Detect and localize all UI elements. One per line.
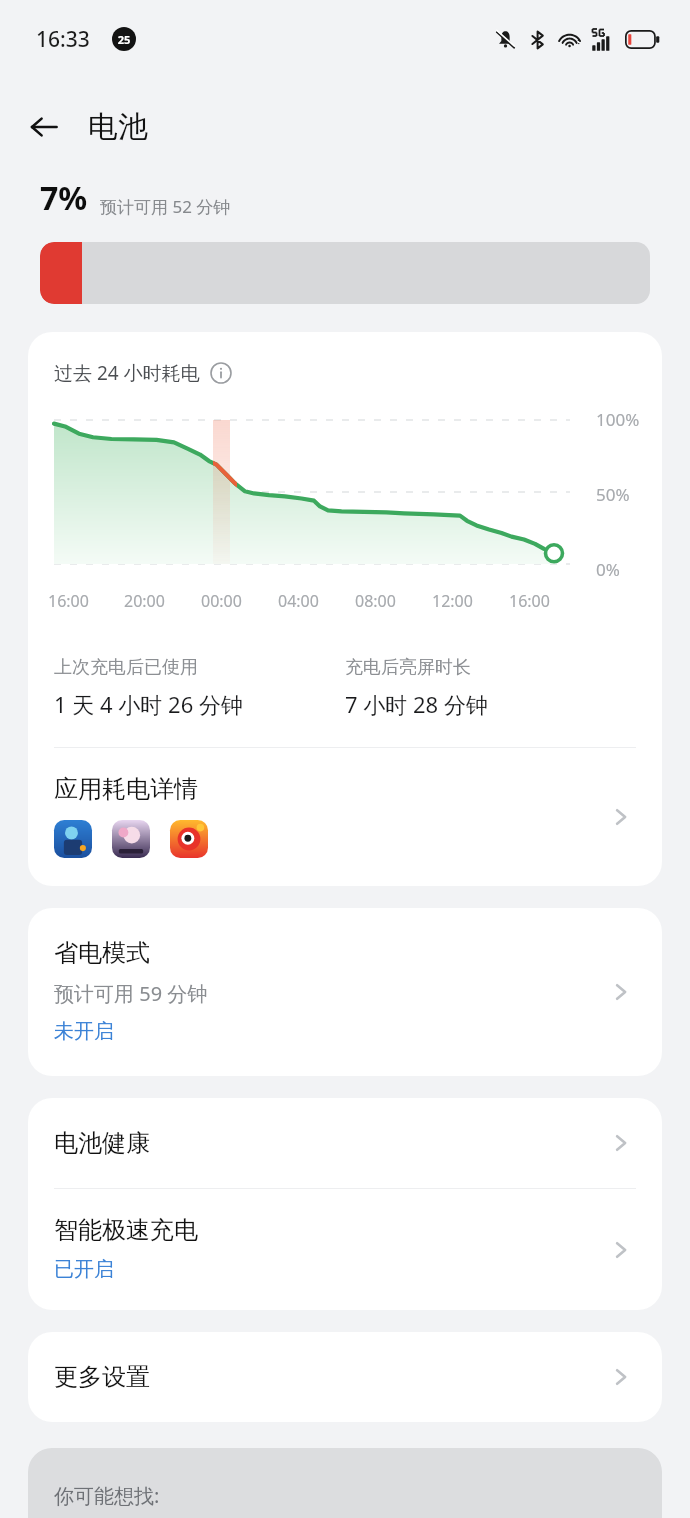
button[interactable]: 智能极速充电 <box>28 1189 662 1310</box>
staticText: 1 天 4 小时 26 分钟 <box>54 689 243 719</box>
staticText: 20:00 <box>124 590 201 612</box>
staticText: 00:00 <box>201 590 278 612</box>
staticText: 上次充电后已使用 <box>54 656 198 679</box>
staticText: 更多设置 <box>54 1362 150 1392</box>
staticText: 16:00 <box>509 590 586 612</box>
staticText: 过去 24 小时耗电 <box>54 360 200 386</box>
staticText: 04:00 <box>278 590 355 612</box>
button[interactable]: 电池健康 <box>28 1098 662 1188</box>
staticText: 7% <box>40 176 88 220</box>
staticText: 电池健康 <box>54 1128 150 1158</box>
staticText: 16:33 <box>36 25 90 54</box>
button[interactable]: 应用耗电详情 <box>28 748 662 886</box>
button[interactable]: Back <box>16 99 72 155</box>
staticText: 电池 <box>88 108 148 146</box>
staticText: 省电模式 <box>54 938 150 968</box>
staticText: 预计可用 52 分钟 <box>100 195 231 218</box>
staticText: 7 小时 28 分钟 <box>345 689 488 719</box>
button[interactable]: 详情 <box>210 362 232 384</box>
staticText: 你可能想找: <box>54 1482 160 1509</box>
staticText: 未开启 <box>54 1019 114 1044</box>
staticText: 16:00 <box>48 590 124 612</box>
staticText: 已开启 <box>54 1257 114 1282</box>
button[interactable]: 更多设置 <box>28 1332 662 1422</box>
staticText: 08:00 <box>355 590 432 612</box>
staticText: 应用耗电详情 <box>54 774 198 804</box>
staticText: 充电后亮屏时长 <box>345 656 471 679</box>
staticText: 100% <box>596 408 640 431</box>
staticText: 25 <box>112 32 136 47</box>
staticText: 12:00 <box>432 590 509 612</box>
button[interactable]: 省电模式 <box>28 908 662 1076</box>
staticText: 0% <box>596 558 620 581</box>
staticText: 智能极速充电 <box>54 1215 198 1245</box>
staticText: 50% <box>596 483 630 506</box>
staticText: 预计可用 59 分钟 <box>54 980 208 1007</box>
